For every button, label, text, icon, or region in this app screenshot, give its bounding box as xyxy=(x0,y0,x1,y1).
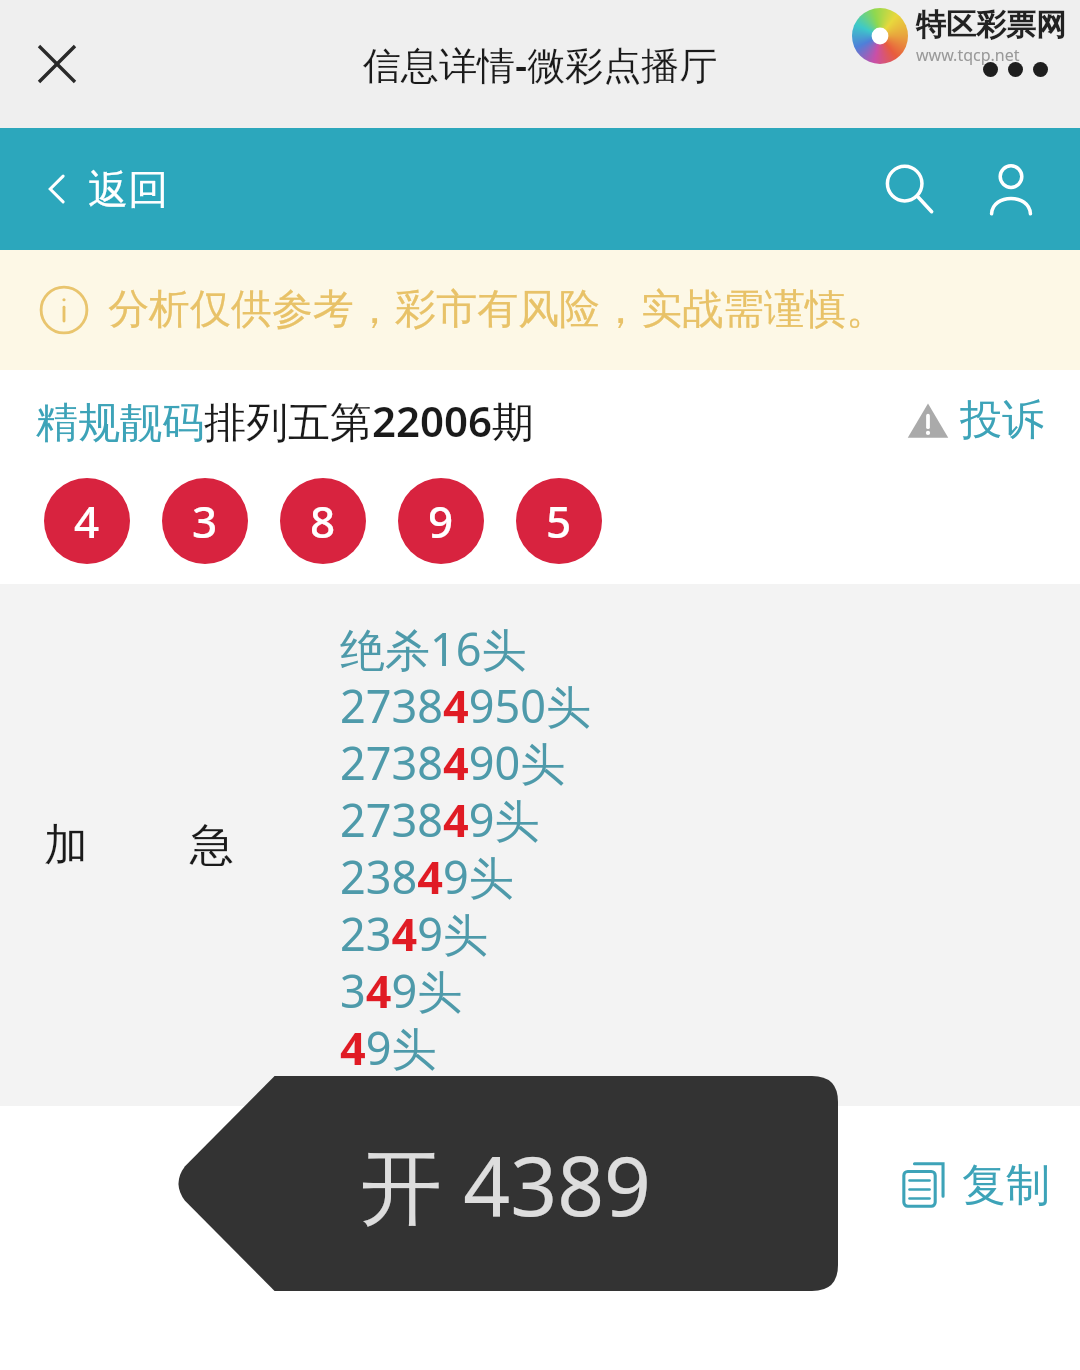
staticText: 5 xyxy=(546,491,572,551)
staticText: 急 xyxy=(190,818,234,873)
button[interactable]: 复制 xyxy=(890,1151,1056,1219)
staticText: 绝杀16头 xyxy=(340,618,527,675)
staticText: 2738490头 xyxy=(340,732,566,789)
staticText: 349头 xyxy=(340,960,463,1017)
staticText: 开 4389 xyxy=(360,1128,651,1240)
staticText: 4 xyxy=(74,491,100,551)
staticText: 9 xyxy=(428,491,454,551)
staticText: 复制 xyxy=(962,1158,1050,1213)
button[interactable]: 返回 xyxy=(34,158,174,220)
staticText: 返回 xyxy=(88,164,168,214)
staticText: 8 xyxy=(310,491,336,551)
button[interactable]: Close xyxy=(22,29,92,99)
button[interactable]: Profile xyxy=(972,150,1050,228)
staticText: 精规靓码排列五第22006期 xyxy=(36,392,535,449)
staticText: 投诉 xyxy=(960,394,1044,447)
staticText: 49头 xyxy=(340,1017,437,1074)
staticText: 23849头 xyxy=(340,846,514,903)
staticText: 加 xyxy=(44,818,88,873)
staticText: 273849头 xyxy=(340,789,540,846)
staticText: 特区彩票网 xyxy=(916,6,1066,44)
button[interactable]: More options xyxy=(979,58,1052,81)
staticText: 27384950头 xyxy=(340,675,591,732)
staticText: www.tqcp.net xyxy=(916,44,1020,66)
staticText: 2349头 xyxy=(340,903,488,960)
button[interactable]: Search xyxy=(870,150,948,228)
staticText: 3 xyxy=(192,491,218,551)
staticText: 分析仅供参考，彩市有风险，实战需谨慎。 xyxy=(108,284,887,336)
button[interactable]: 投诉 xyxy=(900,388,1050,453)
button[interactable]: Result 开 4389 xyxy=(172,1076,838,1291)
staticText: 信息详情-微彩点播厅 xyxy=(363,38,718,90)
